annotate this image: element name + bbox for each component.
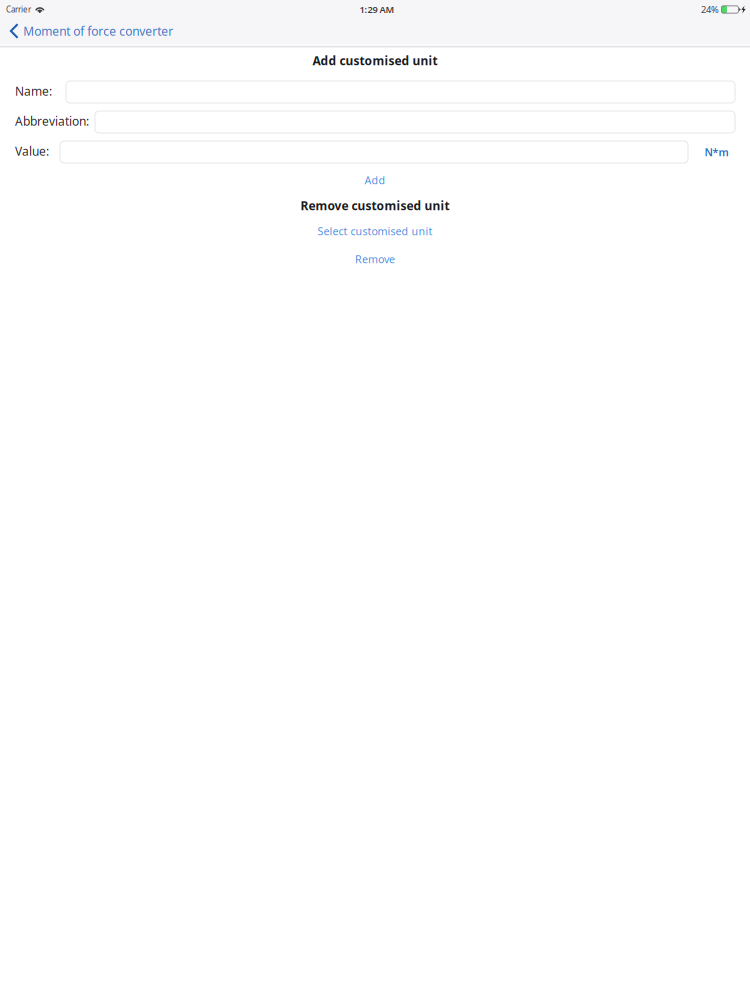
staticText: 24% (701, 3, 719, 16)
staticText: Abbreviation: (15, 113, 89, 129)
button[interactable]: Add (0, 173, 750, 187)
button[interactable]: N*m (698, 141, 735, 163)
staticText: Carrier (6, 4, 31, 15)
staticText: 1:29 AM (359, 3, 394, 16)
staticText: Name: (15, 83, 52, 99)
staticText: Select customised unit (317, 224, 432, 238)
button[interactable]: Moment of force converter (0, 18, 185, 44)
staticText: Add (364, 173, 385, 187)
button[interactable]: Select customised unit (0, 225, 750, 237)
button[interactable]: Name: (66, 81, 735, 103)
staticText: Remove customised unit (300, 197, 449, 213)
staticText: Remove (355, 252, 395, 266)
button[interactable]: Remove (0, 253, 750, 265)
button[interactable]: Value: (60, 141, 688, 163)
staticText: N*m (704, 145, 728, 159)
staticText: Add customised unit (312, 52, 437, 68)
staticText: Moment of force converter (23, 23, 173, 39)
button[interactable]: Abbreviation: (95, 111, 735, 133)
staticText: Value: (15, 143, 49, 159)
